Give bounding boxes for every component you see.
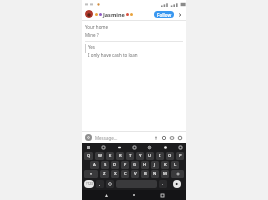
button[interactable]: W — [95, 152, 104, 160]
button[interactable]: Follow — [154, 11, 174, 18]
button[interactable]: Emoji — [177, 135, 183, 141]
button[interactable]: Voice — [153, 135, 159, 141]
button[interactable]: V — [131, 170, 139, 178]
button[interactable]: Keyboard tool 3 — [116, 144, 122, 150]
button[interactable]: Gallery — [169, 135, 175, 141]
staticText: K — [164, 162, 167, 168]
button[interactable]: R — [116, 152, 124, 160]
staticText: Y — [139, 153, 142, 159]
button[interactable]: Keyboard tool 2 — [100, 144, 106, 150]
staticText: Z — [103, 171, 106, 177]
button[interactable]: E — [106, 152, 114, 160]
button[interactable]: Camera — [85, 134, 92, 141]
button[interactable]: D — [111, 161, 119, 169]
button[interactable]: X — [111, 170, 119, 178]
staticText: C — [124, 171, 127, 177]
button[interactable]: Home — [130, 191, 138, 199]
button[interactable]: Keyboard tool 6 — [162, 144, 168, 150]
staticText: U — [148, 153, 152, 159]
button[interactable]: J — [151, 161, 159, 169]
button[interactable]: More options — [176, 11, 183, 18]
button[interactable]: Message... — [95, 135, 153, 141]
staticText: Q — [87, 153, 91, 159]
button[interactable]: Back — [102, 191, 110, 199]
staticText: I only have cash to loan — [88, 52, 138, 58]
button[interactable]: S — [101, 161, 109, 169]
button[interactable]: K — [161, 161, 169, 169]
staticText: F — [124, 162, 127, 168]
staticText: E — [109, 153, 112, 159]
staticText: G — [133, 162, 137, 168]
staticText: N — [153, 171, 157, 177]
button[interactable]: C — [121, 170, 129, 178]
staticText: . — [162, 181, 164, 187]
button[interactable]: P — [176, 152, 184, 160]
staticText: W — [98, 153, 102, 159]
button[interactable]: Send — [173, 180, 181, 188]
button[interactable]: Keyboard tool 4 — [131, 144, 137, 150]
button[interactable]: Recents — [158, 191, 166, 199]
button[interactable]: F — [121, 161, 129, 169]
button[interactable]: Y — [136, 152, 144, 160]
staticText: Message... — [95, 135, 118, 141]
button[interactable]: Profile picture — [85, 10, 93, 18]
staticText: , — [99, 181, 101, 187]
button[interactable]: U — [146, 152, 154, 160]
button[interactable]: Jasmine — [95, 11, 154, 18]
button[interactable]: M — [161, 170, 169, 178]
staticText: Your home — [85, 24, 109, 30]
staticText: J — [154, 162, 156, 168]
button[interactable]: Shift — [84, 170, 98, 178]
staticText: V — [134, 171, 137, 177]
button[interactable]: Keyboard tool 5 — [146, 144, 152, 150]
staticText: Jasmine — [103, 11, 125, 18]
button[interactable]: . — [159, 180, 167, 188]
button[interactable]: T — [126, 152, 134, 160]
staticText: T — [129, 153, 132, 159]
button[interactable]: B — [141, 170, 149, 178]
staticText: R — [119, 153, 122, 159]
button[interactable]: G — [131, 161, 139, 169]
staticText: B — [144, 171, 147, 177]
staticText: X — [114, 171, 117, 177]
staticText: Follow — [157, 12, 172, 18]
button[interactable]: L — [171, 161, 179, 169]
button[interactable]: Sticker — [161, 135, 167, 141]
button[interactable]: Keyboard tool 7 — [177, 144, 183, 150]
staticText: P — [179, 153, 182, 159]
button[interactable]: Backspace — [171, 170, 184, 178]
staticText: H — [143, 162, 147, 168]
staticText: D — [113, 162, 117, 168]
staticText: ?123 — [86, 182, 93, 186]
button[interactable]: A — [90, 161, 99, 169]
button[interactable]: O — [166, 152, 174, 160]
button[interactable]: Q — [84, 152, 93, 160]
button[interactable]: Keyboard tool 1 — [85, 144, 91, 150]
button[interactable]: H — [141, 161, 149, 169]
button[interactable]: Z — [100, 170, 109, 178]
button[interactable]: , — [96, 180, 104, 188]
staticText: A — [93, 162, 96, 168]
button[interactable]: N — [151, 170, 159, 178]
staticText: Yes — [88, 44, 96, 50]
staticText: I — [159, 153, 161, 159]
staticText: O — [168, 153, 172, 159]
button[interactable]: Symbols — [84, 180, 94, 188]
staticText: M — [163, 171, 167, 177]
button[interactable]: I — [156, 152, 164, 160]
staticText: L — [174, 162, 177, 168]
button[interactable]: Emoji — [106, 180, 114, 188]
staticText: S — [104, 162, 107, 168]
staticText: Mine ? — [85, 32, 99, 38]
